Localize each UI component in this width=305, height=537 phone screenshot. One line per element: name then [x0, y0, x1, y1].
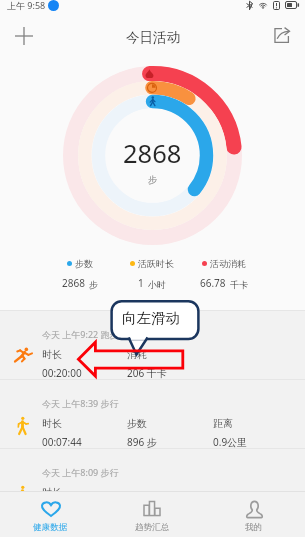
staticText: 66.78 [200, 276, 226, 290]
staticText: 00:07:44 [42, 435, 82, 449]
staticText: 距离 [213, 417, 233, 430]
staticText: 今天 上午8:09 步行 [42, 466, 119, 478]
staticText: 时长 [42, 486, 62, 499]
staticText: 896 步 [127, 435, 157, 449]
staticText: 步数 [75, 258, 93, 269]
staticText: 步 [148, 174, 158, 186]
staticText: 健康数据 [33, 522, 68, 533]
staticText: 步 [89, 279, 98, 290]
staticText: 0.9公里 [213, 435, 248, 449]
button[interactable]: 今天 上午8:39 步行 [0, 380, 305, 448]
staticText: 206 千卡 [127, 366, 167, 380]
staticText: 00:05:12 [42, 504, 82, 518]
staticText: 步数 [127, 417, 147, 430]
staticText: 活动消耗 [210, 258, 246, 269]
button[interactable]: Share [268, 21, 296, 49]
staticText: 趋势汇总 [135, 522, 170, 533]
staticText: 千卡 [230, 279, 248, 290]
staticText: 00:20:00 [42, 366, 82, 380]
button[interactable]: 健康数据 [0, 492, 101, 537]
button[interactable]: 今天 上午8:09 步行 [0, 449, 305, 491]
staticText: 我的 [245, 522, 263, 533]
staticText: 1 [138, 276, 144, 290]
staticText: 时长 [42, 348, 62, 361]
button[interactable]: 趋势汇总 [101, 492, 203, 537]
staticText: 2868 [123, 136, 182, 171]
staticText: 今日活动 [126, 29, 180, 46]
staticText: 消耗 [127, 348, 147, 361]
staticText: 今天 上午8:39 步行 [42, 397, 119, 409]
staticText: 小时 [148, 279, 166, 290]
staticText: 2868 [62, 276, 85, 290]
staticText: 上午 9:58 [7, 0, 46, 11]
button[interactable]: 今天 上午9:22 跑步 [0, 311, 305, 379]
button[interactable]: 我的 [203, 492, 305, 537]
button[interactable]: Add [8, 20, 40, 52]
staticText: 向左滑动 [122, 309, 180, 327]
staticText: 时长 [42, 417, 62, 430]
staticText: 今天 上午9:22 跑步 [42, 328, 119, 340]
staticText: 活跃时长 [138, 258, 174, 269]
